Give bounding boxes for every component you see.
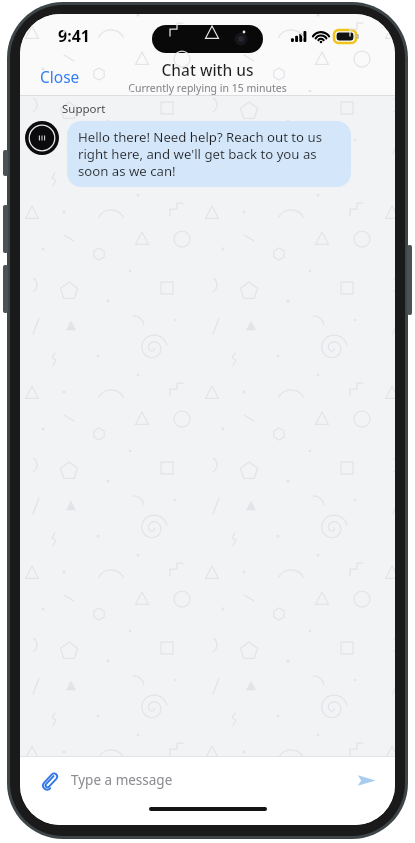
staticText: Currently replying in 15 minutes (128, 81, 287, 95)
other: Support avatar (25, 121, 59, 155)
button[interactable]: Attach file (34, 765, 64, 795)
button[interactable]: Hello there! Need help? Reach out to us … (67, 121, 351, 187)
staticText: Support (62, 101, 106, 117)
staticText: Hello there! Need help? Reach out to us … (78, 128, 340, 180)
staticText: Chat with us (161, 59, 254, 80)
staticText: Type a message (71, 771, 173, 789)
button[interactable]: Send (351, 765, 381, 795)
staticText: 9:41 (58, 25, 90, 47)
staticText: Close (40, 66, 80, 87)
button[interactable]: Close (20, 62, 92, 91)
button[interactable]: Type a message (71, 771, 351, 789)
